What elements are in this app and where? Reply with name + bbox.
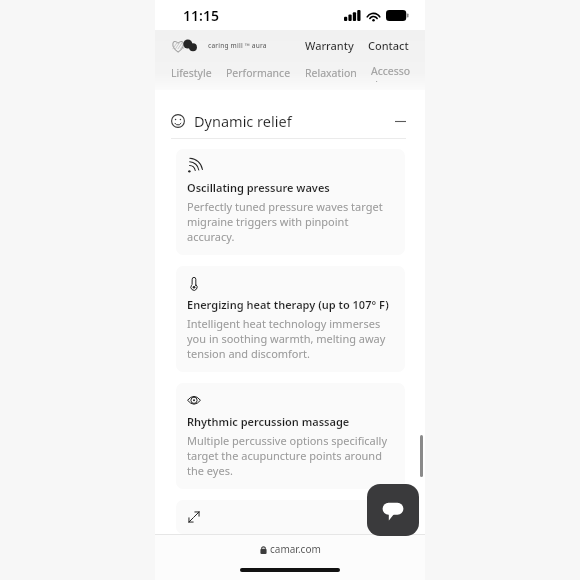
button[interactable]: Warranty bbox=[302, 34, 357, 57]
staticText: camar.com bbox=[270, 542, 321, 556]
staticText: Perfectly tuned pressure waves target mi… bbox=[187, 199, 394, 244]
staticText: Rhythmic percussion massage bbox=[187, 414, 350, 429]
button[interactable]: Lifestyle bbox=[171, 62, 212, 84]
button[interactable]: Oscillating pressure waves bbox=[176, 149, 405, 255]
button[interactable]: Dynamic relief bbox=[155, 104, 425, 138]
staticText: caring mill ™ aura bbox=[208, 41, 267, 50]
button[interactable]: Caring Mill by Aura home bbox=[171, 38, 267, 53]
button[interactable]: Open chat bbox=[367, 484, 419, 536]
staticText: Dynamic relief bbox=[194, 111, 292, 131]
staticText: Oscillating pressure waves bbox=[187, 180, 330, 195]
staticText: Energizing heat therapy (up to 107° F) bbox=[187, 297, 389, 312]
button[interactable]: Performance bbox=[226, 62, 291, 84]
button[interactable]: Rhythmic percussion massage bbox=[176, 383, 405, 489]
button[interactable]: camar.com bbox=[250, 538, 331, 560]
button[interactable]: Energizing heat therapy (up to 107° F) bbox=[176, 266, 405, 372]
button[interactable]: Contact bbox=[365, 34, 412, 57]
button[interactable]: Relaxation bbox=[305, 62, 357, 84]
staticText: Intelligent heat technology immerses you… bbox=[187, 316, 394, 361]
button[interactable]: Accessories bbox=[371, 60, 411, 86]
staticText: 11:15 bbox=[183, 6, 219, 25]
button[interactable]: Smart targeted compression bbox=[176, 500, 405, 534]
staticText: Multiple percussive options specifically… bbox=[187, 433, 394, 478]
